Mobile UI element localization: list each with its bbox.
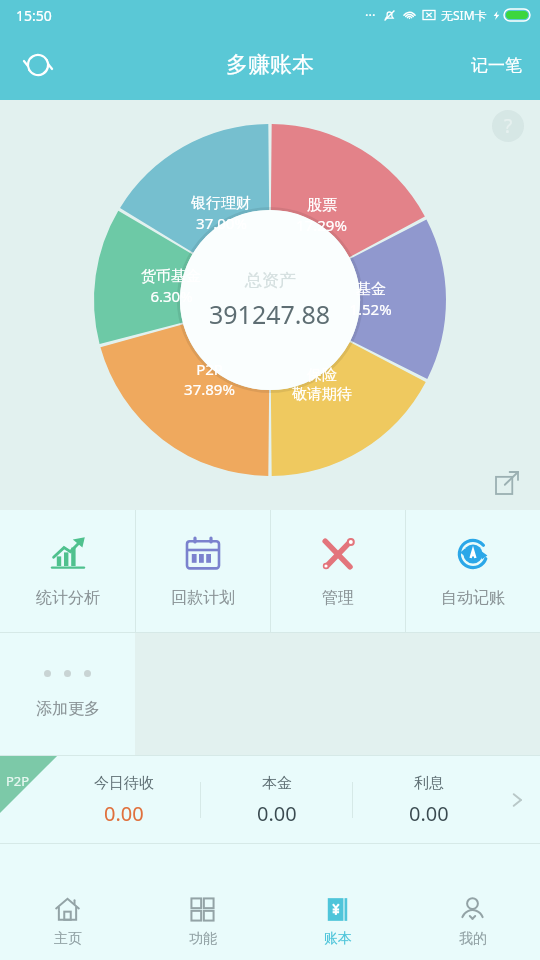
staticText: 回款计划: [171, 588, 235, 608]
staticText: P2P: [196, 359, 223, 379]
staticText: 17.29%: [296, 215, 347, 235]
staticText: 我的: [459, 930, 487, 948]
button[interactable]: 我的: [405, 884, 540, 960]
button[interactable]: 自动记账: [406, 510, 540, 632]
button[interactable]: 记一笔: [463, 49, 530, 82]
staticText: 利息: [414, 774, 444, 793]
staticText: 记一笔: [471, 55, 522, 76]
staticText: 0.00: [409, 800, 449, 827]
staticText: 无SIM卡: [441, 7, 487, 23]
staticText: 今日待收: [94, 774, 154, 793]
staticText: 0.00: [104, 800, 144, 827]
staticText: 391247.88: [209, 297, 331, 331]
staticText: ?: [504, 113, 513, 139]
staticText: 统计分析: [36, 588, 100, 608]
staticText: 敬请期待: [292, 385, 352, 404]
staticText: 总资产: [245, 270, 296, 291]
staticText: ···: [365, 6, 376, 24]
staticText: 本金: [262, 774, 292, 793]
staticText: 股票: [307, 196, 337, 215]
staticText: 多赚账本: [226, 51, 314, 79]
staticText: 37.89%: [184, 379, 235, 399]
button[interactable]: 主页: [0, 884, 135, 960]
button[interactable]: Help: [492, 110, 524, 142]
staticText: 自动记账: [441, 588, 505, 608]
button[interactable]: Refresh: [14, 41, 62, 89]
staticText: P2P: [6, 772, 30, 790]
staticText: 添加更多: [36, 699, 100, 719]
staticText: 保险: [307, 366, 337, 385]
button[interactable]: P2P: [0, 756, 540, 844]
staticText: 货币基金: [141, 267, 201, 286]
button[interactable]: 账本: [270, 884, 405, 960]
button[interactable]: 统计分析: [0, 510, 135, 632]
button[interactable]: Share: [490, 466, 524, 500]
staticText: 37.00%: [196, 213, 247, 233]
button[interactable]: 添加更多: [0, 633, 135, 755]
button[interactable]: 回款计划: [136, 510, 270, 632]
staticText: 账本: [324, 930, 352, 948]
staticText: 0.00: [257, 800, 297, 827]
button[interactable]: 管理: [271, 510, 405, 632]
staticText: 管理: [322, 588, 354, 608]
staticText: 银行理财: [191, 194, 251, 213]
staticText: 6.30%: [150, 286, 193, 306]
staticText: 基金: [356, 280, 386, 299]
staticText: 1.52%: [349, 299, 392, 319]
staticText: 15:50: [16, 6, 52, 25]
staticText: 功能: [189, 930, 217, 948]
staticText: 主页: [54, 930, 82, 948]
button[interactable]: 功能: [135, 884, 270, 960]
